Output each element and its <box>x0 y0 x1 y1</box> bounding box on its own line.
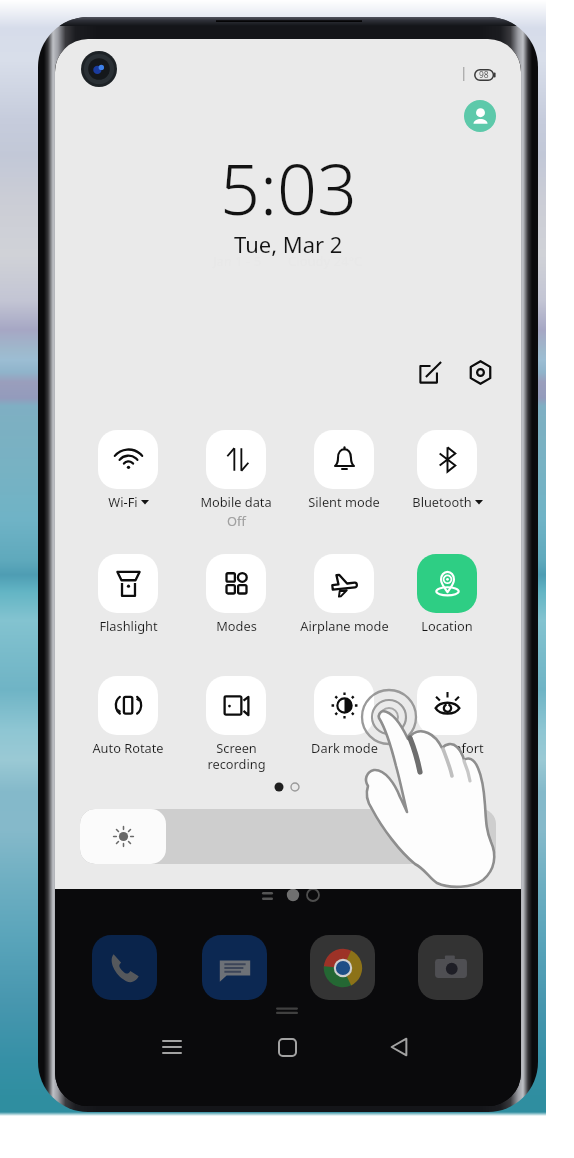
staticText: Mobile data <box>200 493 272 510</box>
button[interactable]: Flashlight <box>75 554 181 634</box>
button[interactable]: Bluetooth <box>394 430 500 510</box>
staticText: 5:03 <box>220 140 357 235</box>
button[interactable]: Camera <box>418 935 483 1000</box>
button[interactable]: Modes <box>183 554 289 634</box>
button[interactable]: Silent mode <box>291 430 397 510</box>
button[interactable]: Chrome <box>310 935 375 1000</box>
staticText: Airplane mode <box>300 617 389 634</box>
staticText: Eye comfort <box>411 739 484 756</box>
button[interactable]: Settings <box>458 350 502 394</box>
staticText: 98 <box>479 69 489 81</box>
button[interactable]: Dark mode <box>291 676 397 756</box>
staticText: Silent mode <box>308 493 380 510</box>
staticText: Off <box>227 512 246 529</box>
button[interactable]: Edit quick settings <box>408 350 452 394</box>
button[interactable]: Brightness <box>80 809 496 864</box>
button[interactable]: Eye comfort <box>394 676 500 756</box>
staticText: Dark mode <box>311 739 378 756</box>
staticText: Auto Rotate <box>92 739 164 756</box>
button[interactable]: Wi-Fi <box>75 430 181 510</box>
button[interactable]: Messages <box>202 935 267 1000</box>
staticText: Modes <box>216 617 257 634</box>
button[interactable]: Mobile data <box>183 430 289 529</box>
button[interactable]: Location <box>394 554 500 634</box>
staticText: Bluetooth <box>412 493 472 510</box>
button[interactable]: User profile <box>464 100 496 132</box>
button[interactable]: Airplane mode <box>291 554 397 634</box>
button[interactable]: Screen recording <box>183 676 289 772</box>
staticText: Wi-Fi <box>108 493 138 510</box>
button[interactable]: Home <box>264 1024 310 1070</box>
button[interactable]: Phone <box>92 935 157 1000</box>
staticText: Tue, Mar 2 <box>234 229 343 259</box>
staticText: Location <box>421 617 473 634</box>
button[interactable]: Auto Rotate <box>75 676 181 756</box>
staticText: Flashlight <box>99 617 158 634</box>
staticText: Screen recording <box>207 739 266 772</box>
staticText: Jan 1 - 5 Cloudy 24°C <box>213 252 363 270</box>
button[interactable]: Recents <box>149 1024 195 1070</box>
button[interactable]: Back <box>376 1024 422 1070</box>
